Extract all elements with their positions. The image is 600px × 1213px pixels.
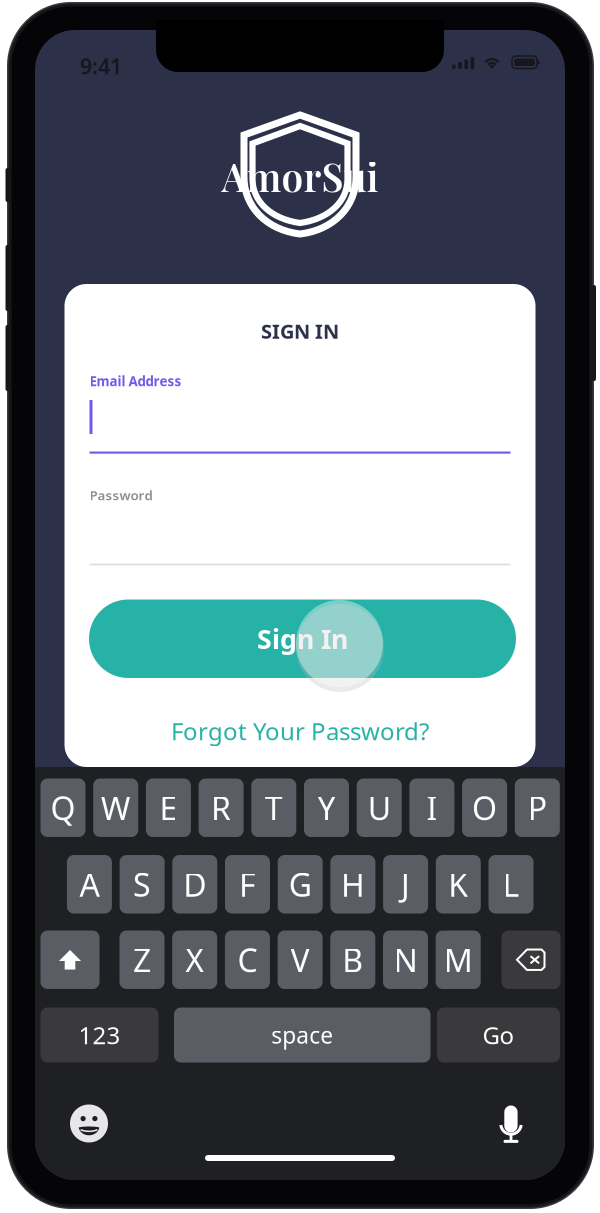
button[interactable]: D [172,855,217,913]
staticText: Forgot Your Password? [171,715,429,747]
staticText: S [133,863,151,905]
button[interactable]: 123 [40,1007,158,1062]
button[interactable]: T [251,778,296,837]
button[interactable]: K [436,855,481,913]
staticText: N [393,938,417,981]
staticText: J [401,863,410,905]
button[interactable]: E [146,778,191,837]
staticText: T [265,786,283,829]
staticText: Y [317,786,335,829]
staticText: U [368,786,391,829]
staticText: AmorSui [221,150,378,202]
button[interactable]: M [436,930,481,989]
staticText: P [528,786,547,829]
staticText: O [472,786,497,829]
button[interactable]: Z [119,930,164,989]
staticText: I [426,786,437,829]
staticText: 9:41 [80,52,122,80]
staticText: Sign In [257,621,348,656]
staticText: M [444,938,473,981]
staticText: G [289,863,312,905]
staticText: C [237,938,257,981]
button[interactable]: A [67,855,112,913]
staticText: A [79,863,99,905]
staticText: E [159,786,177,829]
staticText: Q [50,786,75,829]
button[interactable]: Sign In [89,599,516,678]
staticText: W [101,786,131,829]
staticText: V [291,938,310,981]
button[interactable]: U [357,778,402,837]
button[interactable]: I [409,778,454,837]
staticText: Password [89,486,152,504]
staticText: R [211,786,231,829]
button[interactable]: Q [40,778,85,837]
staticText: K [448,863,468,905]
staticText: H [341,863,365,905]
staticText: SIGN IN [261,318,339,344]
button[interactable]: space [174,1007,430,1062]
staticText: Z [133,938,151,981]
staticText: B [342,938,363,981]
button[interactable]: L [488,855,533,913]
staticText: Go [482,1019,514,1051]
button[interactable]: P [515,778,560,837]
staticText: X [185,938,204,981]
button[interactable]: F [225,855,270,913]
button[interactable]: X [172,930,217,989]
button[interactable]: B [330,930,375,989]
button[interactable]: J [383,855,428,913]
button[interactable]: Dictate [499,1105,523,1143]
button[interactable]: C [225,930,270,989]
staticText: 123 [78,1019,120,1051]
button[interactable]: V [278,930,323,989]
staticText: D [183,863,206,905]
button[interactable]: Y [304,778,349,837]
staticText: F [239,863,256,905]
button[interactable]: G [278,855,323,913]
button[interactable]: W [93,778,138,837]
button[interactable]: Backspace [501,930,560,989]
button[interactable]: O [462,778,507,837]
staticText: space [271,1020,333,1050]
button[interactable]: Go [437,1007,560,1062]
button[interactable]: Shift [40,930,99,989]
button[interactable]: Emoji keyboard [70,1104,108,1142]
staticText: L [502,863,519,905]
button[interactable]: S [120,855,165,913]
button[interactable]: N [383,930,428,989]
staticText: Email Address [89,372,181,390]
button[interactable]: Forgot Your Password? [64,713,535,749]
button[interactable]: H [330,855,375,913]
button[interactable]: R [199,778,244,837]
